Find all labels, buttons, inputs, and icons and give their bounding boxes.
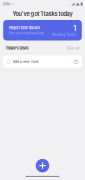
staticText: Project time tracker — [9, 26, 40, 30]
staticText: 3:04 — [2, 2, 9, 6]
button[interactable]: Add task — [36, 159, 49, 172]
staticText: You've got 1 tasks today — [12, 11, 72, 17]
staticText: You can start tracking — [9, 31, 44, 35]
staticText: 1 — [73, 24, 76, 33]
staticText: Today's tasks — [5, 46, 28, 50]
button[interactable]: Clear all — [66, 46, 79, 50]
staticText: Add a new Task — [13, 59, 39, 64]
button[interactable]: Add a new Task — [3, 55, 82, 68]
staticText: Clear all — [66, 46, 79, 50]
staticText: Pending Tasks — [52, 33, 76, 36]
